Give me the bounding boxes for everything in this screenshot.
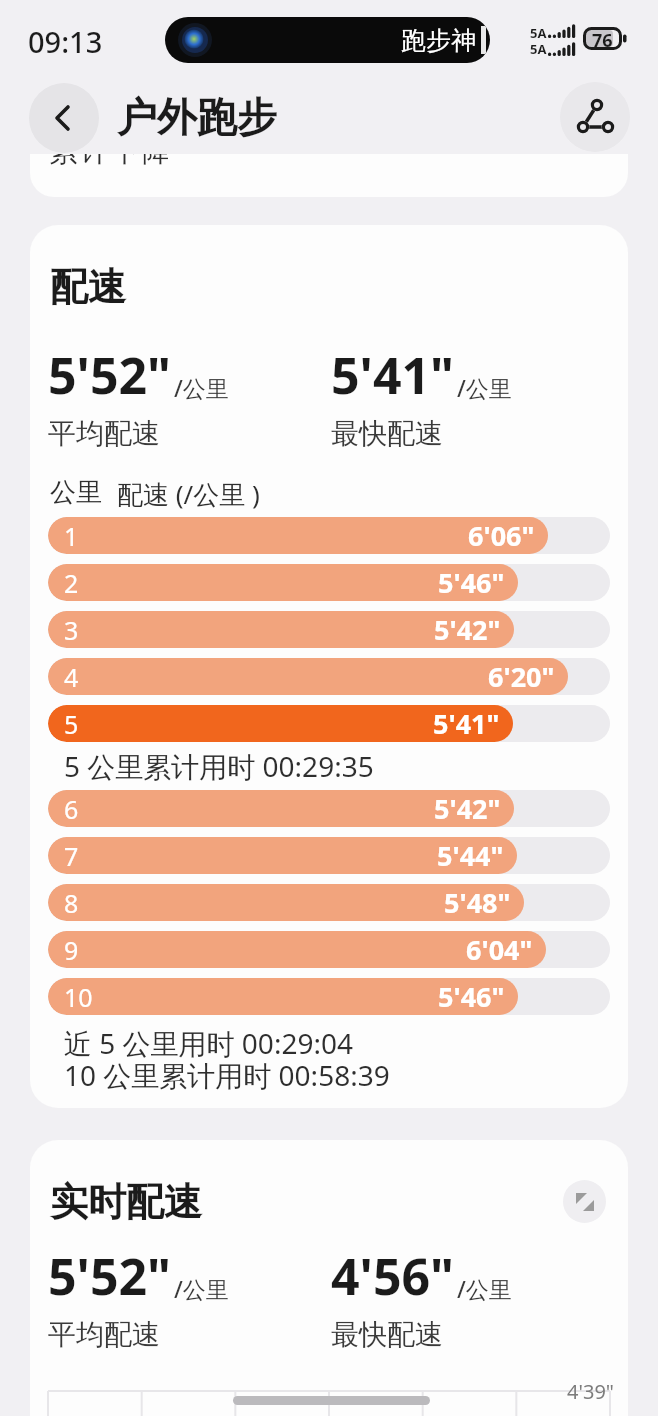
button[interactable]: 8 [48,884,610,921]
staticText: 5A [530,24,547,42]
button[interactable]: 2 [48,564,610,601]
staticText: 6'06" [468,517,535,554]
staticText: 9 [64,933,79,967]
button[interactable]: 9 [48,931,610,968]
staticText: 1 [64,519,79,553]
staticText: 最快配速 [331,1317,443,1352]
staticText: 累计下降 [48,154,172,169]
staticText: 8 [64,886,79,920]
staticText: 5'41" [331,341,455,409]
staticText: 5'42" [434,790,501,827]
staticText: 10 公里累计用时 00:58:39 [64,1056,390,1094]
staticText: 5'42" [434,611,501,648]
staticText: 实时配速 [50,1178,202,1226]
staticText: 7 [64,839,79,873]
staticText: 10 [64,980,93,1014]
staticText: 76 [592,28,613,53]
staticText: 3 [64,613,79,647]
button[interactable]: 7 [48,837,610,874]
staticText: 最快配速 [331,416,443,451]
staticText: 5'48" [444,884,511,921]
button[interactable]: 1 [48,517,610,554]
staticText: 5'46" [438,564,505,601]
staticText: 6'20" [488,658,555,695]
staticText: 4 [64,660,79,694]
staticText: 配速 (/公里 ) [117,476,260,512]
staticText: 5'52" [48,341,172,409]
staticText: 配速 [50,263,126,311]
staticText: 5'41" [433,705,500,742]
staticText: 6'04" [466,931,533,968]
staticText: 5'52" [48,1242,172,1310]
button[interactable] [29,83,99,153]
staticText: 2 [64,566,79,600]
staticText: 5'44" [437,837,504,874]
staticText: 09:13 [28,22,103,61]
staticText: 4'39" [567,1378,614,1405]
button[interactable]: 3 [48,611,610,648]
staticText: /公里 [457,1273,512,1304]
staticText: 5 [64,707,79,741]
staticText: 跑步神 [401,25,476,56]
staticText: 6 [64,792,79,826]
button[interactable] [563,1180,606,1223]
button[interactable] [560,82,630,152]
button[interactable]: 6 [48,790,610,827]
staticText: 公里 [50,476,102,509]
staticText: 5 公里累计用时 00:29:35 [64,747,374,785]
button[interactable]: 4 [48,658,610,695]
staticText: 户外跑步 [117,92,277,142]
staticText: /公里 [174,1273,229,1304]
staticText: 平均配速 [48,416,160,451]
staticText: /公里 [457,372,512,403]
staticText: 平均配速 [48,1317,160,1352]
staticText: /公里 [174,372,229,403]
staticText: 近 5 公里用时 00:29:04 [64,1024,353,1062]
button[interactable]: 10 [48,978,610,1015]
staticText: 4'56" [331,1242,455,1310]
staticText: 5'46" [438,978,505,1015]
staticText: 5A [530,40,547,58]
button[interactable]: 5 [48,705,610,742]
